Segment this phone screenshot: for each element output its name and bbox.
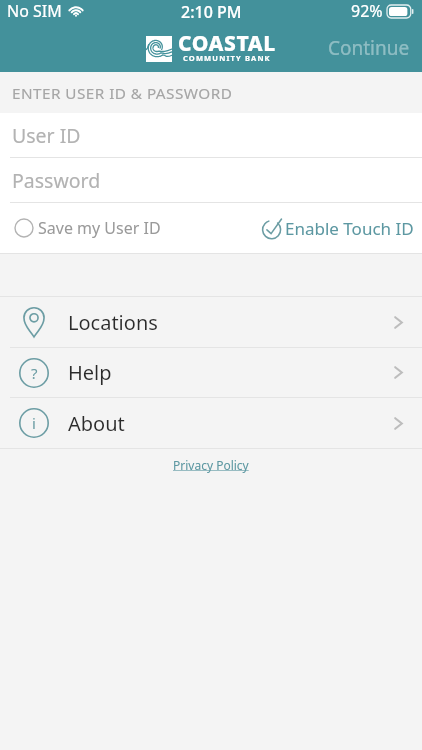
button[interactable]: Privacy Policy [173, 457, 249, 473]
staticText: Help [68, 359, 112, 386]
button[interactable]: Enable Touch ID [262, 216, 414, 240]
staticText: Save my User ID [38, 217, 161, 239]
button[interactable]: Continue [328, 35, 410, 61]
button[interactable]: Password [12, 158, 422, 202]
staticText: User ID [12, 122, 81, 149]
staticText: Locations [68, 309, 158, 336]
button[interactable]: i [19, 398, 403, 448]
staticText: 92% [351, 0, 383, 22]
button[interactable]: Save my User ID [14, 217, 161, 239]
staticText: ENTER USER ID & PASSWORD [12, 83, 233, 104]
button[interactable]: User ID [12, 113, 422, 157]
staticText: Continue [328, 35, 410, 61]
staticText: ? [31, 363, 38, 383]
staticText: COMMUNITY BANK [183, 53, 271, 63]
staticText: i [32, 413, 36, 433]
staticText: Password [12, 167, 101, 194]
staticText: No SIM [7, 0, 62, 22]
staticText: 2:10 PM [181, 1, 242, 23]
staticText: About [68, 410, 125, 437]
button[interactable]: Locations [19, 297, 403, 347]
button[interactable]: ? [19, 348, 403, 397]
staticText: COASTAL [178, 29, 276, 58]
staticText: Enable Touch ID [285, 217, 414, 240]
